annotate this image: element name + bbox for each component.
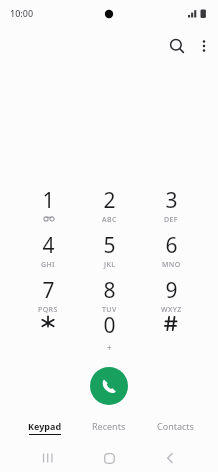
button[interactable]: Contacts [142, 420, 208, 444]
staticText: PQRS [38, 305, 58, 315]
staticText: DEF [164, 215, 178, 225]
button[interactable]: Call [90, 367, 128, 405]
button[interactable]: 2 [81, 186, 137, 228]
button[interactable]: 7 [20, 276, 76, 318]
staticText: Recents [92, 420, 126, 432]
staticText: 2 [103, 186, 116, 215]
staticText: 6 [165, 231, 178, 260]
staticText: Keypad [28, 420, 62, 432]
button[interactable]: More options [192, 34, 216, 58]
staticText: TUV [102, 305, 117, 315]
button[interactable]: 3 [143, 186, 199, 228]
staticText: 10:00 [10, 7, 34, 19]
staticText: Contacts [157, 420, 194, 432]
button[interactable]: Back [158, 446, 182, 470]
staticText: 5 [103, 231, 116, 260]
staticText: 4 [42, 231, 55, 260]
staticText: 1 [42, 186, 55, 215]
button[interactable]: Recents [76, 420, 142, 444]
button[interactable]: 9 [143, 276, 199, 318]
button[interactable]: 1 [20, 186, 76, 228]
button[interactable]: 4 [20, 231, 76, 273]
staticText: GHI [41, 260, 56, 270]
staticText: 0 [103, 311, 116, 340]
button[interactable]: 0 [81, 311, 137, 353]
staticText: 8 [103, 276, 116, 305]
staticText: + [107, 342, 112, 353]
button[interactable]: Search [165, 34, 189, 58]
button[interactable]: Keypad [12, 420, 78, 444]
staticText: 9 [165, 276, 178, 305]
staticText: 7 [42, 276, 55, 305]
button[interactable]: 5 [81, 231, 137, 273]
button[interactable] [143, 311, 199, 353]
button[interactable]: Home [97, 446, 121, 470]
staticText: MNO [162, 260, 181, 270]
staticText: WXYZ [161, 305, 182, 315]
staticText: JKL [104, 260, 116, 270]
staticText: 3 [165, 186, 178, 215]
button[interactable]: Recents [36, 446, 60, 470]
button[interactable]: 6 [143, 231, 199, 273]
button[interactable] [20, 311, 76, 353]
button[interactable]: 8 [81, 276, 137, 318]
staticText: ABC [102, 215, 117, 225]
